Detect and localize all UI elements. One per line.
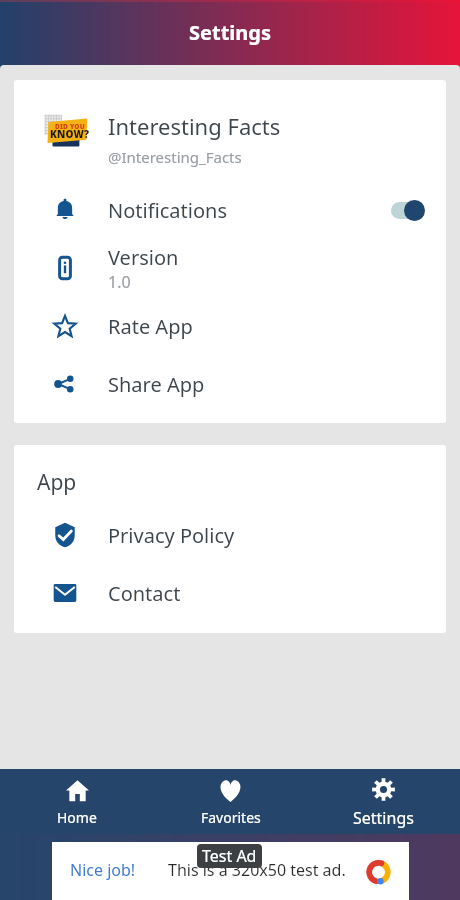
button[interactable]: Notifications toggle bbox=[390, 198, 426, 222]
staticText: DID YOU bbox=[55, 122, 85, 131]
button[interactable]: Privacy Policy bbox=[14, 506, 446, 564]
staticText: Privacy Policy bbox=[108, 522, 235, 549]
staticText: Test Ad bbox=[202, 845, 257, 867]
staticText: KNOW? bbox=[50, 127, 90, 141]
button[interactable]: Favorites bbox=[154, 769, 307, 834]
button[interactable]: Home bbox=[0, 769, 154, 834]
staticText: Version bbox=[108, 244, 179, 271]
button[interactable]: Share App bbox=[14, 355, 446, 413]
button[interactable]: Settings bbox=[307, 769, 460, 834]
staticText: Rate App bbox=[108, 313, 193, 340]
button[interactable]: DID YOU bbox=[14, 80, 446, 181]
staticText: App bbox=[37, 468, 77, 497]
staticText: Contact bbox=[108, 580, 181, 607]
staticText: Home bbox=[57, 808, 97, 827]
staticText: Share App bbox=[108, 371, 205, 398]
staticText: Nice job! bbox=[70, 859, 136, 881]
staticText: This is a 320x50 test ad. bbox=[168, 859, 346, 881]
button[interactable]: Version bbox=[14, 239, 446, 297]
staticText: Settings bbox=[353, 807, 414, 829]
button[interactable]: Contact bbox=[14, 564, 446, 622]
staticText: Notifications bbox=[108, 197, 227, 224]
staticText: 1.0 bbox=[108, 271, 131, 293]
staticText: Settings bbox=[189, 19, 271, 46]
staticText: Favorites bbox=[201, 808, 261, 827]
button[interactable]: Rate App bbox=[14, 297, 446, 355]
staticText: @Interesting_Facts bbox=[108, 147, 242, 167]
button[interactable]: Notifications bbox=[14, 181, 446, 239]
staticText: Interesting Facts bbox=[108, 111, 281, 141]
